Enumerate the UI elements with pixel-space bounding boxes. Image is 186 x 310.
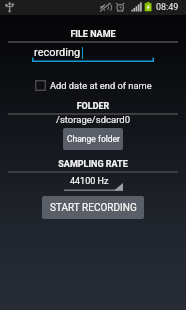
staticText: FOLDER xyxy=(0,101,186,112)
staticText: FILE NAME xyxy=(0,29,186,40)
staticText: SAMPLING RATE xyxy=(0,159,186,170)
button[interactable]: recording xyxy=(32,45,154,62)
staticText: 44100 Hz xyxy=(70,176,109,187)
staticText: recording xyxy=(34,46,81,59)
staticText: Add date at end of name xyxy=(50,80,152,91)
staticText: START RECORDING xyxy=(50,202,137,214)
button[interactable]: 44100 Hz xyxy=(64,175,123,191)
button[interactable]: Change folder xyxy=(63,128,123,150)
staticText: /storage/sdcard0 xyxy=(0,114,186,125)
staticText: Change folder xyxy=(67,134,120,144)
button[interactable]: Add date at end of name xyxy=(35,78,152,92)
button[interactable]: START RECORDING xyxy=(42,196,144,219)
staticText: 08:49 xyxy=(156,2,179,13)
